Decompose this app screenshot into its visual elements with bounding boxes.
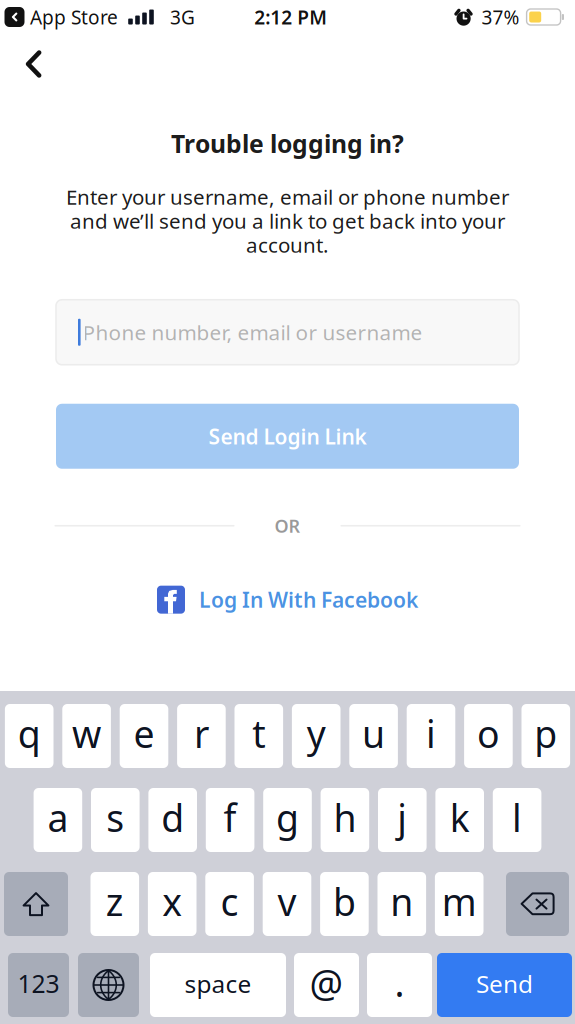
button[interactable]: c	[205, 872, 254, 936]
staticText: j	[397, 793, 407, 842]
staticText: y	[307, 709, 326, 758]
button[interactable]: l	[493, 788, 541, 852]
button[interactable]: space	[150, 953, 286, 1017]
staticText: 37%	[482, 4, 520, 30]
staticText: z	[106, 877, 124, 926]
button[interactable]: 123	[8, 953, 69, 1017]
staticText: o	[477, 709, 500, 758]
staticText: x	[162, 877, 182, 926]
button[interactable]: Send	[437, 953, 572, 1017]
staticText: p	[534, 709, 557, 758]
button[interactable]: w	[62, 704, 111, 768]
staticText: Phone number, email or username	[83, 318, 423, 346]
button[interactable]: x	[148, 872, 196, 936]
staticText: e	[133, 709, 154, 758]
button[interactable]: Switch keyboard	[78, 953, 139, 1017]
button[interactable]: b	[320, 872, 369, 936]
button[interactable]: .	[367, 953, 432, 1017]
staticText: c	[221, 877, 239, 926]
button[interactable]: z	[90, 872, 139, 936]
button[interactable]: i	[407, 704, 455, 768]
button[interactable]: m	[435, 872, 483, 936]
button[interactable]: y	[292, 704, 340, 768]
button[interactable]: n	[377, 872, 426, 936]
button[interactable]: a	[34, 788, 82, 852]
staticText: r	[194, 709, 209, 758]
staticText: 123	[17, 967, 59, 1000]
button[interactable]: u	[349, 704, 398, 768]
staticText: k	[450, 793, 470, 842]
button[interactable]: v	[263, 872, 311, 936]
staticText: Send Login Link	[208, 422, 366, 450]
button[interactable]: p	[521, 704, 570, 768]
button[interactable]: d	[148, 788, 197, 852]
staticText: 2:12 PM	[254, 4, 327, 30]
button[interactable]: j	[378, 788, 427, 852]
staticText: 3G	[170, 4, 195, 30]
staticText: App Store	[30, 4, 118, 30]
staticText: a	[47, 793, 68, 842]
button[interactable]: t	[234, 704, 283, 768]
staticText: h	[333, 793, 356, 842]
staticText: d	[161, 793, 184, 842]
staticText: and we’ll send you a link to get back in…	[70, 207, 505, 234]
staticText: n	[390, 877, 413, 926]
button[interactable]: e	[120, 704, 168, 768]
staticText: q	[18, 709, 41, 758]
staticText: Enter your username, email or phone numb…	[66, 183, 509, 210]
staticText: .	[394, 958, 404, 1007]
staticText: m	[442, 877, 477, 926]
button[interactable]: f	[206, 788, 254, 852]
staticText: Trouble logging in?	[171, 127, 404, 160]
staticText: v	[277, 877, 296, 926]
staticText: g	[276, 793, 299, 842]
button[interactable]: h	[321, 788, 369, 852]
button[interactable]: k	[435, 788, 484, 852]
button[interactable]: r	[177, 704, 226, 768]
staticText: w	[72, 709, 101, 758]
staticText: Send	[476, 967, 533, 1000]
staticText: t	[252, 709, 265, 758]
button[interactable]: Back to App Store	[0, 4, 118, 30]
button[interactable]: @	[294, 953, 359, 1017]
button[interactable]: Delete	[506, 872, 569, 936]
button[interactable]: Shift	[4, 872, 68, 936]
staticText: OR	[274, 514, 300, 538]
staticText: Log In With Facebook	[199, 586, 418, 614]
staticText: account.	[246, 231, 329, 258]
button[interactable]: s	[91, 788, 140, 852]
staticText: s	[106, 793, 124, 842]
button[interactable]: q	[5, 704, 53, 768]
button[interactable]: Log In With Facebook	[141, 576, 434, 624]
button[interactable]: Back	[0, 34, 57, 80]
button[interactable]: Send Login Link	[56, 404, 519, 469]
button[interactable]: g	[263, 788, 312, 852]
staticText: b	[333, 877, 356, 926]
staticText: @	[309, 958, 343, 1007]
button[interactable]: Phone number, email or username	[56, 300, 519, 365]
staticText: u	[362, 709, 385, 758]
staticText: l	[512, 793, 522, 842]
staticText: space	[184, 967, 251, 1000]
button[interactable]: o	[464, 704, 513, 768]
staticText: i	[426, 709, 436, 758]
staticText: f	[224, 793, 237, 842]
